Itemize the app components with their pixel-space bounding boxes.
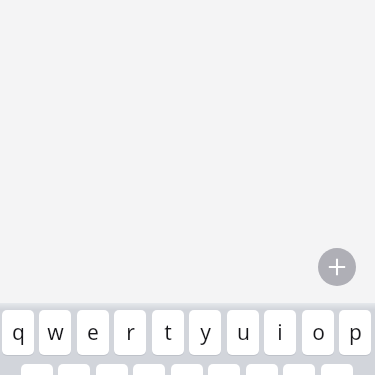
button[interactable]: e bbox=[77, 310, 109, 355]
button[interactable]: q bbox=[2, 310, 34, 355]
button[interactable]: o bbox=[302, 310, 334, 355]
button[interactable]: p bbox=[339, 310, 371, 355]
staticText: i bbox=[277, 318, 283, 347]
button[interactable]: u bbox=[227, 310, 259, 355]
button[interactable]: d bbox=[96, 364, 128, 375]
staticText: q bbox=[12, 318, 25, 347]
button[interactable]: w bbox=[39, 310, 71, 355]
button[interactable]: f bbox=[133, 364, 165, 375]
staticText: r bbox=[126, 318, 135, 347]
staticText: e bbox=[87, 318, 99, 347]
button[interactable]: l bbox=[321, 364, 353, 375]
button[interactable]: g bbox=[171, 364, 203, 375]
staticText: o bbox=[312, 318, 325, 347]
staticText: t bbox=[164, 318, 172, 347]
button[interactable]: t bbox=[152, 310, 184, 355]
button[interactable]: y bbox=[189, 310, 221, 355]
staticText: u bbox=[237, 318, 250, 347]
staticText: p bbox=[349, 318, 362, 347]
button[interactable]: h bbox=[208, 364, 240, 375]
button[interactable]: a bbox=[21, 364, 53, 375]
button[interactable]: r bbox=[114, 310, 146, 355]
button[interactable]: i bbox=[264, 310, 296, 355]
staticText: y bbox=[200, 318, 211, 347]
staticText: w bbox=[47, 318, 64, 347]
button[interactable]: k bbox=[283, 364, 315, 375]
button[interactable]: j bbox=[246, 364, 278, 375]
button[interactable]: Add attachment bbox=[318, 248, 356, 286]
button[interactable]: s bbox=[58, 364, 90, 375]
